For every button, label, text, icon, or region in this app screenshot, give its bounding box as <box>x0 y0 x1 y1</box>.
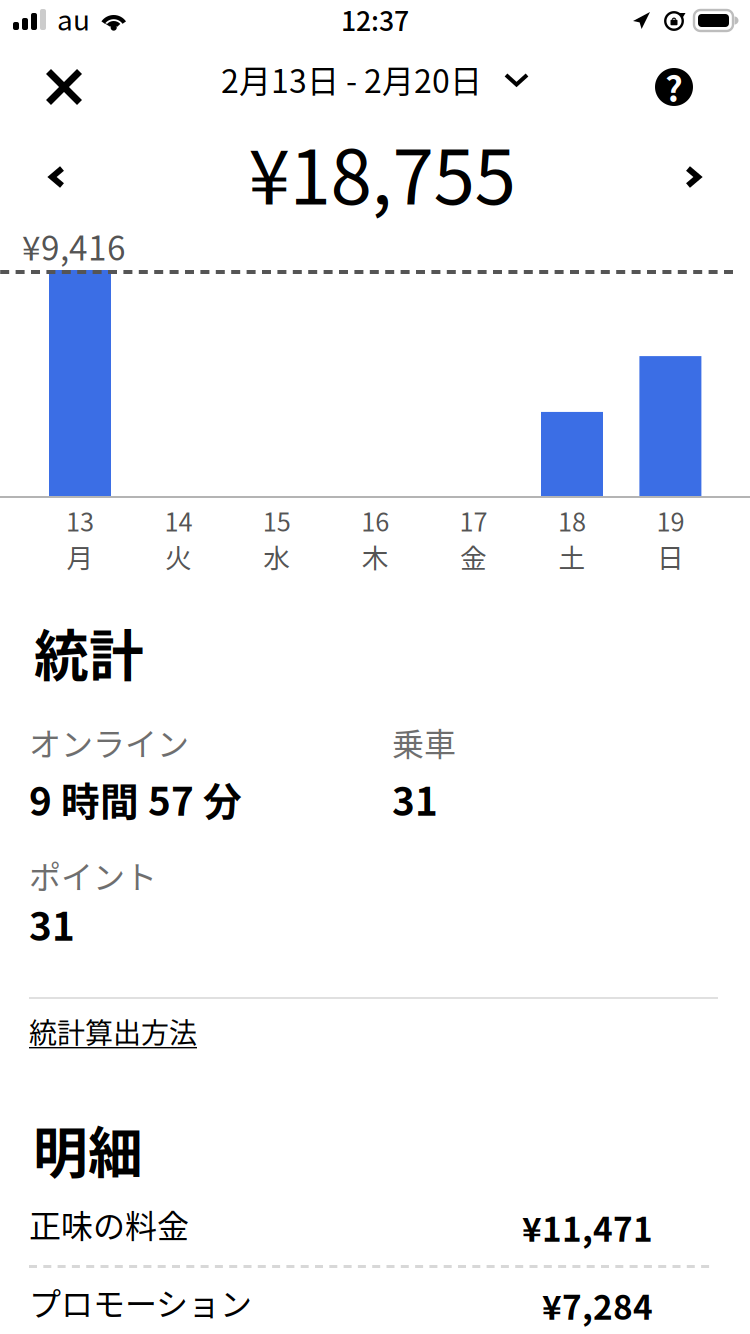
staticText: オンライン <box>29 719 189 765</box>
staticText: 統計 <box>34 612 144 691</box>
staticText: 土 <box>558 537 585 576</box>
staticText: 金 <box>460 537 487 576</box>
staticText: 16 <box>361 502 389 539</box>
button[interactable]: Close <box>18 50 110 122</box>
staticText: 31 <box>392 771 438 827</box>
staticText: 乗車 <box>392 719 456 765</box>
staticText: ¥9,416 <box>22 222 126 270</box>
button[interactable]: 2月13日 - 2月20日 <box>0 50 750 120</box>
staticText: 13 <box>66 502 94 539</box>
staticText: au <box>57 0 90 38</box>
staticText: プロモーション <box>29 1279 252 1325</box>
staticText: 17 <box>460 502 488 539</box>
staticText: 31 <box>29 896 75 952</box>
staticText: 日 <box>657 537 684 576</box>
staticText: 明細 <box>33 1109 143 1188</box>
staticText: 火 <box>165 537 192 576</box>
staticText: ¥7,284 <box>542 1281 653 1329</box>
button[interactable]: Help <box>628 50 720 122</box>
button[interactable]: Previous week <box>0 122 110 222</box>
staticText: 9 時間 57 分 <box>29 771 242 827</box>
staticText: 14 <box>164 502 192 539</box>
staticText: ¥11,471 <box>522 1203 653 1251</box>
staticText: 15 <box>263 502 291 539</box>
staticText: 正味の料金 <box>29 1201 189 1247</box>
staticText: 19 <box>656 502 684 539</box>
button[interactable]: 統計算出方法 <box>29 999 197 1109</box>
staticText: 月 <box>66 537 93 576</box>
staticText: 統計算出方法 <box>29 1011 197 1051</box>
staticText: ¥18,755 <box>248 118 515 226</box>
staticText: ? <box>665 62 683 112</box>
staticText: 2月13日 - 2月20日 <box>221 56 482 102</box>
staticText: 水 <box>263 537 290 576</box>
button[interactable]: Next week <box>640 122 750 222</box>
staticText: ポイント <box>29 852 157 898</box>
staticText: 18 <box>558 502 586 539</box>
staticText: 12:37 <box>341 0 409 39</box>
staticText: 木 <box>362 537 389 576</box>
